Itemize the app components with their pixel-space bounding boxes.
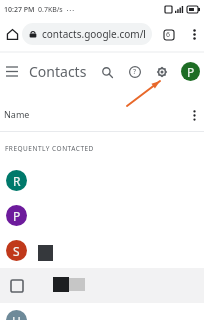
staticText: H [12, 313, 21, 320]
staticText: Name [4, 108, 30, 120]
button[interactable]: Settings [153, 63, 171, 81]
button[interactable]: contacts.google.com/l [22, 23, 152, 45]
staticText: 0.7KB/s [38, 5, 63, 15]
staticText: Contacts [29, 62, 87, 81]
staticText: contacts.google.com/l [42, 27, 146, 41]
staticText: FREQUENTLY CONTACTED [5, 144, 94, 153]
button[interactable] [0, 268, 204, 303]
staticText: ? [133, 67, 137, 77]
button[interactable]: S [0, 233, 204, 268]
button[interactable]: Tabs [161, 27, 176, 42]
staticText: P [13, 208, 21, 224]
button[interactable]: P [0, 198, 204, 233]
button[interactable]: R [0, 163, 204, 198]
button[interactable]: H [0, 303, 204, 320]
button[interactable]: Home [2, 24, 22, 44]
staticText: 10:27 PM [4, 5, 35, 15]
button[interactable]: Menu [2, 61, 22, 81]
button[interactable]: More options [185, 25, 203, 43]
button[interactable]: Sort options [185, 106, 203, 124]
button[interactable]: Search [98, 63, 116, 81]
button[interactable]: Account [181, 62, 200, 81]
staticText: 6 [166, 30, 171, 40]
staticText: ⋯ [66, 6, 74, 15]
staticText: S [13, 243, 20, 259]
staticText: P [187, 64, 195, 80]
staticText: R [13, 173, 21, 189]
button[interactable]: Help [126, 63, 144, 81]
